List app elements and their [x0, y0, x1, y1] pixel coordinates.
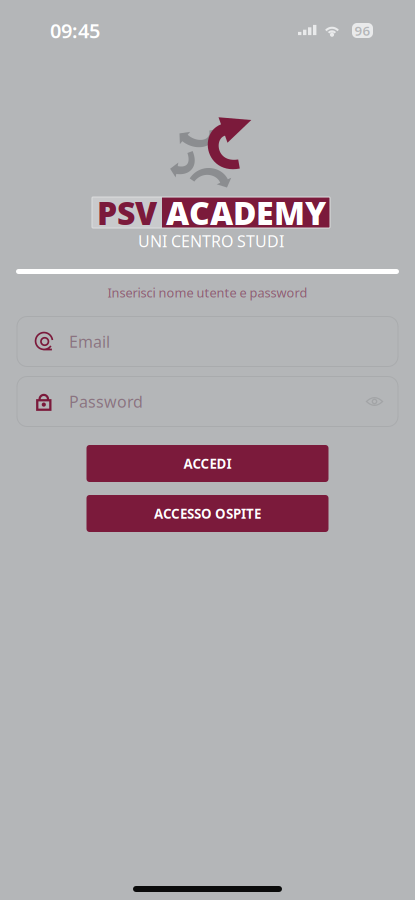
- staticText: Inserisci nome utente e password: [107, 284, 307, 301]
- staticText: ACADEMY: [166, 191, 326, 234]
- staticText: ACCEDI: [183, 455, 231, 472]
- button[interactable]: ACCEDI: [86, 445, 328, 482]
- staticText: Password: [69, 391, 143, 412]
- staticText: Email: [69, 331, 110, 352]
- staticText: UNI CENTRO STUDI: [138, 230, 284, 252]
- staticText: 09:45: [50, 17, 100, 44]
- button[interactable]: ACCESSO OSPITE: [86, 495, 328, 532]
- staticText: 96: [354, 22, 370, 39]
- staticText: ACCESSO OSPITE: [154, 505, 261, 522]
- staticText: PSV: [97, 191, 157, 234]
